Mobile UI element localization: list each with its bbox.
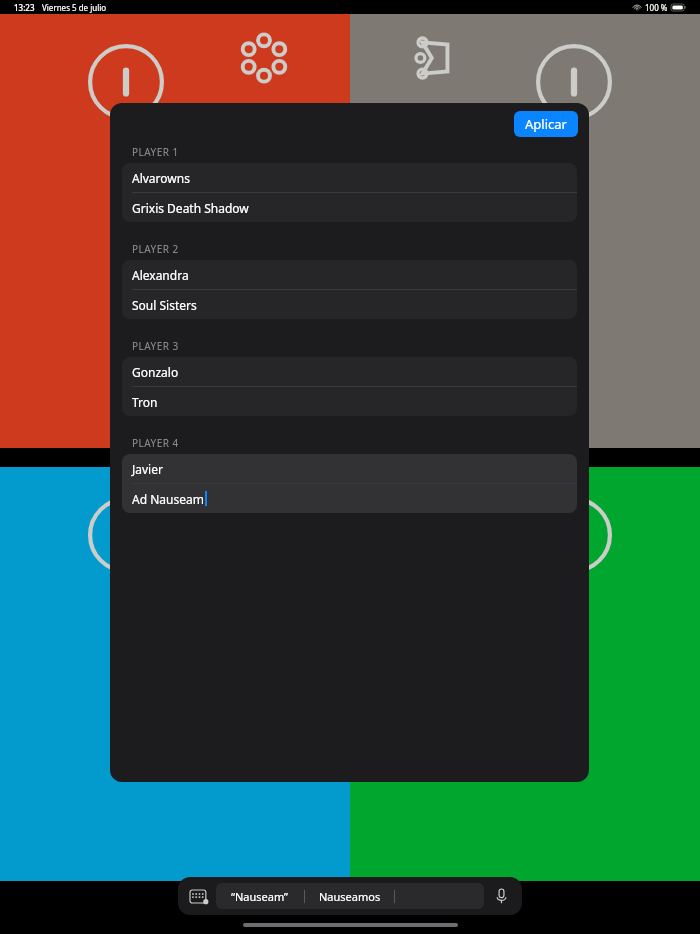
staticText: Alvarowns — [132, 170, 190, 186]
staticText: PLAYER 1 — [132, 145, 179, 159]
button[interactable]: Tron — [122, 387, 577, 416]
button[interactable]: Dictate — [490, 885, 512, 907]
staticText: Nauseamos — [319, 889, 381, 904]
staticText: Ad Nauseam — [132, 491, 204, 507]
button[interactable]: Commander damage — [238, 485, 290, 537]
button[interactable]: 20 — [0, 14, 350, 448]
staticText: 13:23 — [14, 2, 35, 13]
button[interactable]: Aplicar — [514, 111, 578, 137]
button[interactable]: Grixis Death Shadow — [122, 193, 577, 222]
button[interactable]: Decrease life — [536, 44, 612, 120]
button[interactable]: Alexandra — [122, 260, 577, 289]
staticText: 20 — [73, 588, 277, 760]
button[interactable]: Decrease life — [536, 497, 612, 573]
button[interactable]: 20 — [0, 467, 350, 881]
button[interactable]: Ad Nauseam — [122, 484, 577, 513]
button[interactable]: 20 — [350, 467, 700, 881]
button[interactable]: Javier — [122, 454, 577, 483]
staticText: Viernes 5 de julio — [42, 2, 107, 13]
staticText: 20 — [423, 588, 627, 760]
button[interactable]: Poison counters — [238, 32, 290, 84]
staticText: PLAYER 3 — [132, 339, 179, 353]
staticText: Gonzalo — [132, 364, 179, 380]
button[interactable]: “Nauseam” — [216, 883, 304, 909]
button[interactable]: Alvarowns — [122, 163, 577, 192]
button[interactable]: Decrease life — [88, 44, 164, 120]
button[interactable]: Commander damage — [410, 32, 462, 84]
staticText: 20 — [73, 145, 277, 317]
staticText: PLAYER 4 — [132, 436, 179, 450]
button[interactable]: Soul Sisters — [122, 290, 577, 319]
button[interactable]: Nauseamos — [305, 883, 394, 909]
button[interactable]: Gonzalo — [122, 357, 577, 386]
button[interactable]: Poison counters — [410, 485, 462, 537]
staticText: Javier — [132, 461, 163, 477]
staticText: Soul Sisters — [132, 297, 197, 313]
staticText: PLAYER 2 — [132, 242, 179, 256]
staticText: Grixis Death Shadow — [132, 200, 249, 216]
staticText: Aplicar — [525, 115, 567, 133]
staticText: Alexandra — [132, 267, 189, 283]
button[interactable]: Increase life — [88, 497, 164, 573]
staticText: Tron — [132, 394, 158, 410]
staticText: 20 — [423, 145, 627, 317]
staticText: “Nauseam” — [231, 889, 289, 904]
button[interactable]: 20 — [350, 14, 700, 448]
staticText: 100 % — [645, 2, 668, 13]
button[interactable]: Keyboard — [188, 885, 210, 907]
